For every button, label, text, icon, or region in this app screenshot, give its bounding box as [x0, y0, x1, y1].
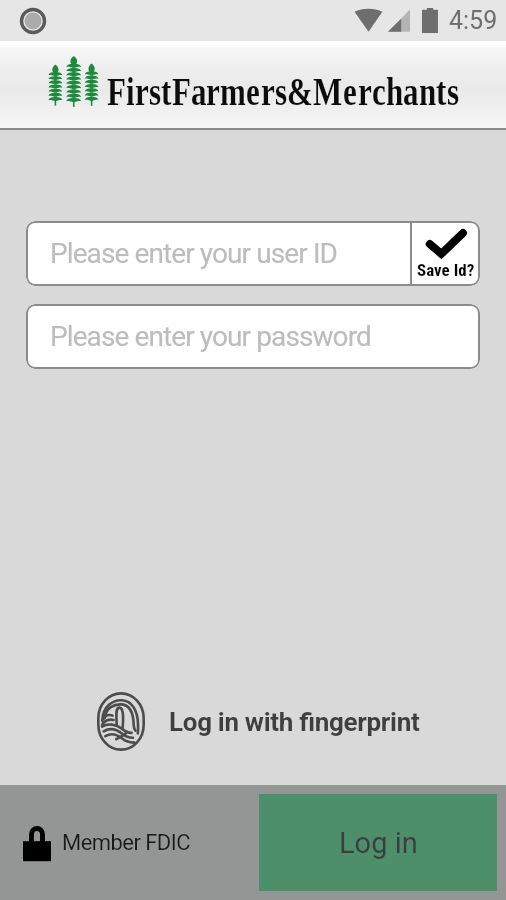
- staticText: Save Id?: [417, 260, 475, 280]
- staticText: Please enter your password: [50, 320, 371, 353]
- staticText: Log in with fingerprint: [169, 707, 420, 737]
- staticText: 4:59: [449, 6, 498, 35]
- button[interactable]: Please enter your password: [26, 304, 480, 369]
- other: Notification: [20, 8, 46, 34]
- button[interactable]: Member FDIC: [23, 823, 190, 863]
- staticText: Log in: [339, 826, 418, 860]
- button[interactable]: Please enter your user ID: [50, 221, 410, 286]
- button[interactable]: Log in with fingerprint: [0, 692, 506, 751]
- staticText: Please enter your user ID: [50, 237, 338, 270]
- staticText: Member FDIC: [62, 830, 190, 856]
- button[interactable]: Save Id: [412, 221, 480, 286]
- button[interactable]: Log in: [259, 794, 497, 891]
